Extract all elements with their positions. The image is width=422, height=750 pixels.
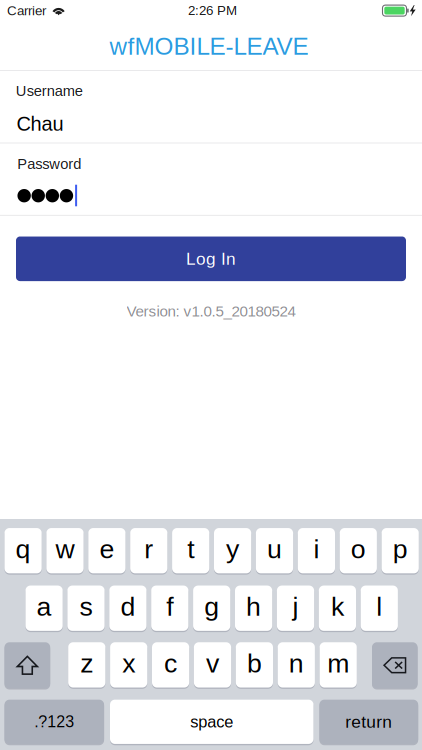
button[interactable]: .?123	[0, 519, 422, 750]
button[interactable]: b	[0, 519, 422, 750]
button[interactable]: p	[0, 519, 422, 750]
button[interactable]: l	[0, 519, 422, 750]
staticText: k	[331, 592, 344, 621]
staticText: Version: v1.0.5_20180524	[126, 303, 295, 320]
button[interactable]: z	[0, 519, 422, 750]
staticText: s	[79, 592, 92, 621]
staticText: Log In	[186, 249, 236, 268]
button[interactable]: x	[0, 519, 422, 750]
button[interactable]: j	[0, 519, 422, 750]
button[interactable]: n	[0, 519, 422, 750]
button[interactable]: Shift	[0, 519, 422, 750]
staticText: y	[226, 534, 239, 564]
staticText: i	[313, 534, 319, 564]
staticText: a	[37, 592, 52, 621]
staticText: w	[55, 534, 74, 564]
button[interactable]: return	[0, 519, 422, 750]
staticText: l	[376, 592, 382, 621]
button[interactable]: i	[0, 519, 422, 750]
staticText: Password	[17, 156, 81, 172]
staticText: Username	[16, 83, 83, 99]
button[interactable]: d	[0, 519, 422, 750]
staticText: t	[187, 534, 194, 564]
staticText: m	[327, 648, 349, 678]
button[interactable]: q	[0, 519, 422, 750]
staticText: r	[144, 534, 153, 564]
staticText: p	[393, 534, 408, 564]
button[interactable]: k	[0, 519, 422, 750]
staticText: b	[247, 648, 262, 678]
button[interactable]: Log In	[16, 236, 406, 281]
staticText: q	[16, 534, 31, 564]
staticText: e	[99, 534, 114, 564]
staticText: h	[246, 592, 261, 621]
staticText: c	[164, 648, 177, 678]
staticText: x	[122, 648, 135, 678]
staticText: n	[289, 648, 304, 678]
button[interactable]: e	[0, 519, 422, 750]
staticText: o	[351, 534, 366, 564]
staticText: return	[345, 712, 392, 731]
staticText: j	[292, 592, 298, 621]
staticText: v	[206, 648, 219, 678]
staticText: wfMOBILE-LEAVE	[109, 33, 308, 60]
staticText: Chau	[16, 113, 63, 135]
button[interactable]: space	[0, 519, 422, 750]
button[interactable]: r	[0, 519, 422, 750]
staticText: z	[80, 648, 93, 678]
button[interactable]: t	[0, 519, 422, 750]
button[interactable]: o	[0, 519, 422, 750]
staticText: space	[190, 713, 233, 731]
staticText: d	[120, 592, 135, 621]
button[interactable]: Delete	[0, 519, 422, 750]
button[interactable]: h	[0, 519, 422, 750]
button[interactable]: w	[0, 519, 422, 750]
button[interactable]: v	[0, 519, 422, 750]
button[interactable]: a	[0, 519, 422, 750]
button[interactable]: u	[0, 519, 422, 750]
button[interactable]: c	[0, 519, 422, 750]
staticText: u	[267, 534, 282, 564]
staticText: g	[204, 592, 219, 621]
button[interactable]: s	[0, 519, 422, 750]
button[interactable]: y	[0, 519, 422, 750]
staticText: f	[166, 592, 173, 621]
button[interactable]: g	[0, 519, 422, 750]
button[interactable]: f	[0, 519, 422, 750]
staticText: Carrier	[7, 3, 46, 18]
button[interactable]: m	[0, 519, 422, 750]
staticText: .?123	[34, 713, 74, 731]
staticText: 2:26 PM	[188, 3, 237, 18]
